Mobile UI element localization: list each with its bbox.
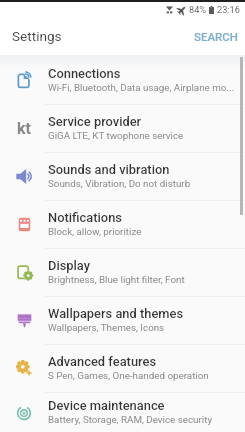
staticText: S Pen, Games, One-handed operation xyxy=(48,370,209,381)
button[interactable]: Sounds and vibration xyxy=(0,153,245,200)
staticText: Sounds, Vibration, Do not disturb xyxy=(48,178,191,189)
staticText: Wi-Fi, Bluetooth, Data usage, Airplane m… xyxy=(48,82,235,93)
staticText: Wallpapers, Themes, Icons xyxy=(48,322,165,333)
staticText: 23:16 xyxy=(217,4,240,15)
staticText: Sounds and vibration xyxy=(48,162,170,177)
button[interactable]: Advanced features xyxy=(0,345,245,392)
staticText: Brightness, Blue light filter, Font xyxy=(48,274,185,285)
staticText: Block, allow, prioritize xyxy=(48,226,142,237)
button[interactable]: Notifications xyxy=(0,201,245,248)
staticText: Settings xyxy=(12,28,62,44)
button[interactable]: Wallpapers and themes xyxy=(0,297,245,344)
staticText: Wallpapers and themes xyxy=(48,306,184,321)
staticText: Battery, Storage, RAM, Device security xyxy=(48,414,213,425)
button[interactable]: SEARCH xyxy=(183,21,245,52)
staticText: 84% xyxy=(189,4,207,15)
staticText: kt xyxy=(17,119,31,138)
button[interactable]: kt xyxy=(0,105,245,152)
staticText: Advanced features xyxy=(48,354,157,369)
staticText: Device maintenance xyxy=(48,398,165,413)
staticText: GiGA LTE, KT twophone service xyxy=(48,130,184,141)
staticText: Display xyxy=(48,258,91,273)
staticText: SEARCH xyxy=(194,30,238,43)
staticText: Service provider xyxy=(48,114,142,129)
button[interactable]: Connections xyxy=(0,57,245,104)
staticText: Connections xyxy=(48,66,121,81)
button[interactable]: Device maintenance xyxy=(0,393,245,432)
button[interactable]: Display xyxy=(0,249,245,296)
staticText: Notifications xyxy=(48,210,122,225)
